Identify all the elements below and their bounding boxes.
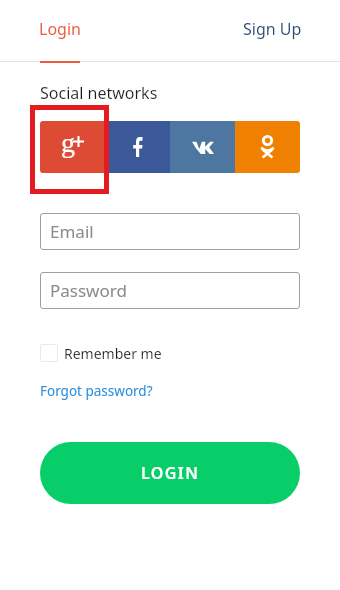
button[interactable]: Forgot password? (40, 382, 153, 400)
button[interactable]: Login (8, 0, 112, 58)
button[interactable]: Sign in with Google Plus (40, 121, 105, 173)
staticText: Password (50, 279, 127, 302)
staticText: Sign Up (243, 18, 302, 40)
button[interactable]: Email (40, 213, 300, 250)
button[interactable]: Password (40, 272, 300, 309)
button[interactable]: Sign in with VK (170, 121, 235, 173)
button[interactable]: Sign Up (218, 0, 326, 58)
staticText: g (61, 127, 75, 158)
button[interactable]: Sign in with Facebook (105, 121, 170, 173)
button[interactable]: Remember me (40, 342, 162, 364)
staticText: LOGIN (141, 462, 200, 484)
button[interactable]: Sign in with Odnoklassniki (235, 121, 300, 173)
staticText: Social networks (40, 82, 158, 104)
staticText: Email (50, 220, 94, 243)
staticText: Login (39, 18, 81, 40)
staticText: Remember me (64, 344, 162, 363)
button[interactable]: LOGIN (40, 442, 300, 504)
